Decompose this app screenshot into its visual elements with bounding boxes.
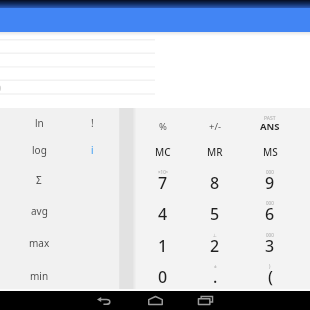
staticText: ⊥ <box>213 233 217 238</box>
staticText: 5 <box>210 203 220 225</box>
staticText: ×10ⁿ <box>158 169 168 175</box>
staticText: 000 <box>266 169 274 175</box>
staticText: 9 <box>265 172 275 194</box>
button[interactable]: ln <box>16 110 62 136</box>
button[interactable]: 5 <box>188 199 242 229</box>
staticText: ! <box>91 116 94 130</box>
button[interactable]: 000 <box>243 168 297 198</box>
staticText: % <box>159 120 167 133</box>
button[interactable]: Home <box>135 291 175 310</box>
staticText: MC <box>155 145 171 159</box>
staticText: MS <box>263 145 278 159</box>
button[interactable]: Recent apps <box>185 291 225 310</box>
staticText: MR <box>207 145 223 159</box>
button[interactable]: ) <box>243 262 297 292</box>
button[interactable]: 1 <box>136 231 190 261</box>
staticText: 6 <box>265 203 275 225</box>
button[interactable]: min <box>16 263 62 289</box>
button[interactable]: ± <box>188 262 242 292</box>
staticText: i <box>91 143 94 157</box>
button[interactable]: i <box>69 137 115 163</box>
staticText: ± <box>214 263 217 269</box>
button[interactable]: MC <box>136 137 190 167</box>
staticText: 4 <box>158 203 168 225</box>
staticText: min <box>30 269 49 283</box>
button[interactable]: Back <box>84 291 124 310</box>
button[interactable]: 000 <box>243 199 297 229</box>
button[interactable]: 4 <box>136 199 190 229</box>
button[interactable]: MS <box>243 137 297 167</box>
button[interactable]: MR <box>188 137 242 167</box>
staticText: . <box>213 266 218 288</box>
staticText: ANS <box>260 120 280 133</box>
button[interactable]: Σ <box>16 167 62 193</box>
button[interactable]: ! <box>69 110 115 136</box>
button[interactable]: avg <box>16 198 62 224</box>
staticText: max <box>29 236 50 250</box>
staticText: 3 <box>265 235 275 257</box>
button[interactable]: max <box>16 230 62 256</box>
button[interactable]: 8 <box>188 168 242 198</box>
staticText: 9 <box>0 82 2 94</box>
staticText: log <box>32 143 47 157</box>
staticText: avg <box>31 204 48 218</box>
staticText: PAST <box>264 115 276 122</box>
staticText: 000 <box>266 200 274 206</box>
staticText: Σ <box>36 173 42 187</box>
button[interactable]: % <box>136 111 190 141</box>
staticText: 2 <box>210 235 220 257</box>
button[interactable]: ×10ⁿ <box>136 168 190 198</box>
staticText: ( <box>268 266 273 288</box>
button[interactable]: ⊥ <box>188 231 242 261</box>
staticText: ln <box>35 116 44 130</box>
button[interactable]: 0 <box>136 262 190 292</box>
button[interactable]: 000 <box>243 231 297 261</box>
staticText: 000 <box>266 232 274 238</box>
staticText: 7 <box>158 172 168 194</box>
staticText: 8 <box>210 172 220 194</box>
button[interactable]: +/- <box>188 111 242 141</box>
staticText: 1 <box>158 235 168 257</box>
staticText: 0 <box>158 266 168 288</box>
staticText: +/- <box>209 120 222 133</box>
staticText: ) <box>269 263 271 269</box>
button[interactable]: PAST <box>243 111 297 141</box>
button[interactable]: log <box>16 137 62 163</box>
